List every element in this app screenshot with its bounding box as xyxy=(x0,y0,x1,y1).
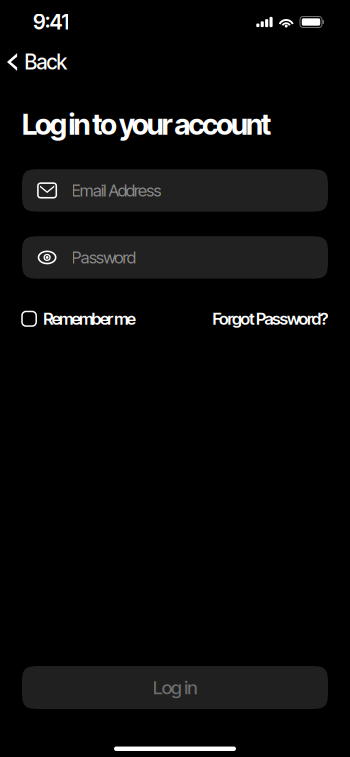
staticText: Password xyxy=(72,247,136,268)
staticText: Back xyxy=(24,49,67,74)
staticText: 9:41 xyxy=(33,9,69,34)
staticText: Forgot Password? xyxy=(212,309,328,329)
button[interactable]: Back xyxy=(0,43,79,80)
staticText: Log in xyxy=(153,676,197,699)
staticText: Email Address xyxy=(72,180,161,201)
staticText: Remember me xyxy=(43,309,136,329)
button[interactable]: Forgot Password? xyxy=(212,309,328,329)
button[interactable]: Log in xyxy=(22,666,328,709)
button[interactable]: Remember me xyxy=(22,309,136,329)
staticText: Log in to your account xyxy=(22,107,271,142)
